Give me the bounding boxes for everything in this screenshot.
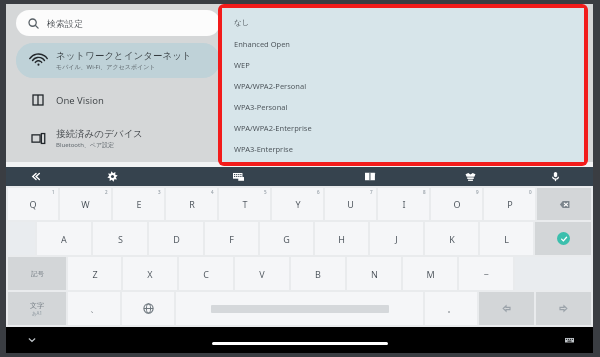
staticText: 検索設定 — [47, 18, 83, 29]
button[interactable]: H — [315, 222, 368, 255]
button[interactable]: Voice input — [517, 167, 593, 186]
button[interactable]: K — [425, 222, 478, 255]
button[interactable]: Enhanced Open — [234, 33, 584, 54]
button[interactable]: Y — [272, 188, 323, 220]
button[interactable]: R — [166, 188, 217, 220]
button[interactable]: Switch keyboard — [561, 332, 577, 348]
button[interactable]: I — [378, 188, 429, 220]
staticText: 1 — [52, 189, 55, 195]
staticText: 0 — [529, 189, 532, 195]
button[interactable]: Collapse keyboard — [6, 167, 65, 186]
button[interactable]: Q — [8, 188, 58, 220]
button[interactable]: 記号 — [8, 257, 66, 290]
button[interactable]: WPA/WPA2-Personal — [234, 75, 584, 96]
button[interactable]: V — [235, 257, 289, 290]
button[interactable]: A — [37, 222, 91, 255]
staticText: M — [426, 268, 435, 280]
button[interactable]: G — [260, 222, 313, 255]
staticText: Q — [29, 198, 37, 210]
button[interactable]: X — [123, 257, 177, 290]
staticText: − — [483, 268, 489, 280]
staticText: 5 — [264, 189, 267, 195]
button[interactable]: 接続済みのデバイス — [16, 122, 220, 154]
staticText: WPA/WPA2-Enterprise — [234, 123, 312, 133]
staticText: モバイル、Wi-Fi、アクセスポイント — [56, 63, 156, 71]
button[interactable]: WPA3-Enterprise — [234, 138, 584, 159]
button[interactable]: Hide keyboard — [24, 332, 40, 348]
button[interactable]: T — [219, 188, 270, 220]
button[interactable]: Enter — [535, 222, 591, 255]
staticText: X — [147, 268, 153, 280]
button[interactable]: One Vision — [16, 87, 220, 113]
button[interactable]: WPA3-Personal — [234, 96, 584, 117]
button[interactable]: L — [480, 222, 533, 255]
button[interactable]: U — [325, 188, 376, 220]
staticText: P — [507, 198, 513, 210]
staticText: Z — [92, 268, 98, 280]
staticText: 3 — [158, 189, 161, 195]
staticText: L — [504, 233, 509, 245]
button[interactable]: − — [459, 257, 513, 290]
staticText: S — [118, 233, 123, 245]
button[interactable]: ネットワークとインターネット — [16, 43, 220, 78]
button[interactable]: 検索設定 — [16, 10, 220, 36]
staticText: WPA/WPA2-Personal — [234, 81, 307, 91]
staticText: N — [371, 268, 378, 280]
button[interactable]: C — [179, 257, 233, 290]
button[interactable]: Keyboard settings — [65, 167, 159, 186]
button[interactable]: Change language — [122, 292, 174, 325]
button[interactable]: Space — [176, 292, 423, 325]
button[interactable]: Clipboard — [317, 167, 423, 186]
button[interactable]: Keyboard layout — [159, 167, 317, 186]
staticText: Bluetooth、ペア設定 — [56, 141, 115, 149]
button[interactable]: WPA/WPA2-Enterprise — [234, 117, 584, 138]
staticText: Y — [295, 198, 301, 210]
staticText: One Vision — [56, 94, 104, 107]
button[interactable]: Stickers — [423, 167, 517, 186]
staticText: 接続済みのデバイス — [56, 128, 143, 140]
staticText: 2 — [105, 189, 108, 195]
button[interactable]: J — [370, 222, 423, 255]
staticText: 6 — [317, 189, 320, 195]
staticText: A — [61, 233, 67, 245]
button[interactable]: なし — [234, 12, 584, 33]
button[interactable]: Backspace — [537, 188, 591, 220]
staticText: ネットワークとインターネット — [56, 50, 192, 62]
staticText: WPA3-Enterprise — [234, 144, 293, 154]
button[interactable]: W — [60, 188, 111, 220]
staticText: R — [189, 198, 195, 210]
button[interactable]: D — [149, 222, 203, 255]
staticText: 8 — [423, 189, 426, 195]
staticText: 文字 — [30, 301, 44, 310]
button[interactable]: Left — [479, 292, 534, 325]
staticText: F — [229, 233, 234, 245]
staticText: 4 — [211, 189, 214, 195]
button[interactable]: S — [93, 222, 147, 255]
staticText: T — [242, 198, 248, 210]
staticText: K — [449, 233, 455, 245]
staticText: I — [402, 198, 406, 210]
staticText: WPA3-Personal — [234, 102, 288, 112]
button[interactable]: 文字 — [8, 292, 66, 325]
button[interactable]: Z — [68, 257, 121, 290]
button[interactable]: M — [403, 257, 457, 290]
button[interactable]: F — [205, 222, 258, 255]
button[interactable]: N — [347, 257, 401, 290]
staticText: あA1 — [32, 310, 43, 316]
button[interactable]: P — [484, 188, 535, 220]
button[interactable]: Right — [536, 292, 591, 325]
button[interactable]: Home — [212, 342, 388, 345]
staticText: なし — [234, 18, 250, 27]
button[interactable]: O — [431, 188, 482, 220]
staticText: 7 — [370, 189, 373, 195]
staticText: O — [453, 198, 461, 210]
staticText: E — [136, 198, 142, 210]
staticText: V — [259, 268, 265, 280]
button[interactable]: E — [113, 188, 164, 220]
staticText: 記号 — [31, 270, 44, 278]
staticText: 9 — [476, 189, 479, 195]
button[interactable]: WEP — [234, 54, 584, 75]
button[interactable]: B — [291, 257, 345, 290]
